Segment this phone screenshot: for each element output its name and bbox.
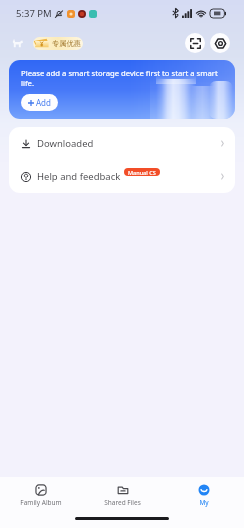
button[interactable]: Help and feedback — [9, 160, 235, 193]
button[interactable]: Add — [21, 94, 58, 111]
staticText: 专属优惠 — [52, 39, 81, 48]
staticText: Downloaded — [37, 137, 94, 150]
button[interactable]: My — [163, 483, 244, 507]
staticText: Shared Files — [104, 498, 141, 507]
staticText: Help and feedback — [37, 170, 121, 183]
button[interactable]: Downloaded — [9, 127, 235, 160]
button[interactable]: Scan QR code — [185, 33, 205, 53]
button[interactable]: Family Album — [0, 483, 82, 507]
staticText: My — [199, 498, 209, 507]
staticText: Add — [36, 97, 51, 108]
button[interactable]: Settings — [210, 33, 230, 53]
button[interactable]: Shared Files — [82, 483, 163, 507]
button[interactable]: Pet — [8, 33, 28, 53]
button[interactable]: Please add a smart storage device first … — [9, 60, 235, 119]
staticText: 5:37 PM — [16, 7, 52, 20]
staticText: Please add a smart storage device first … — [21, 68, 224, 88]
staticText: Manual CS — [128, 169, 156, 176]
staticText: Family Album — [20, 498, 62, 507]
button[interactable]: 专属优惠 — [33, 37, 83, 50]
